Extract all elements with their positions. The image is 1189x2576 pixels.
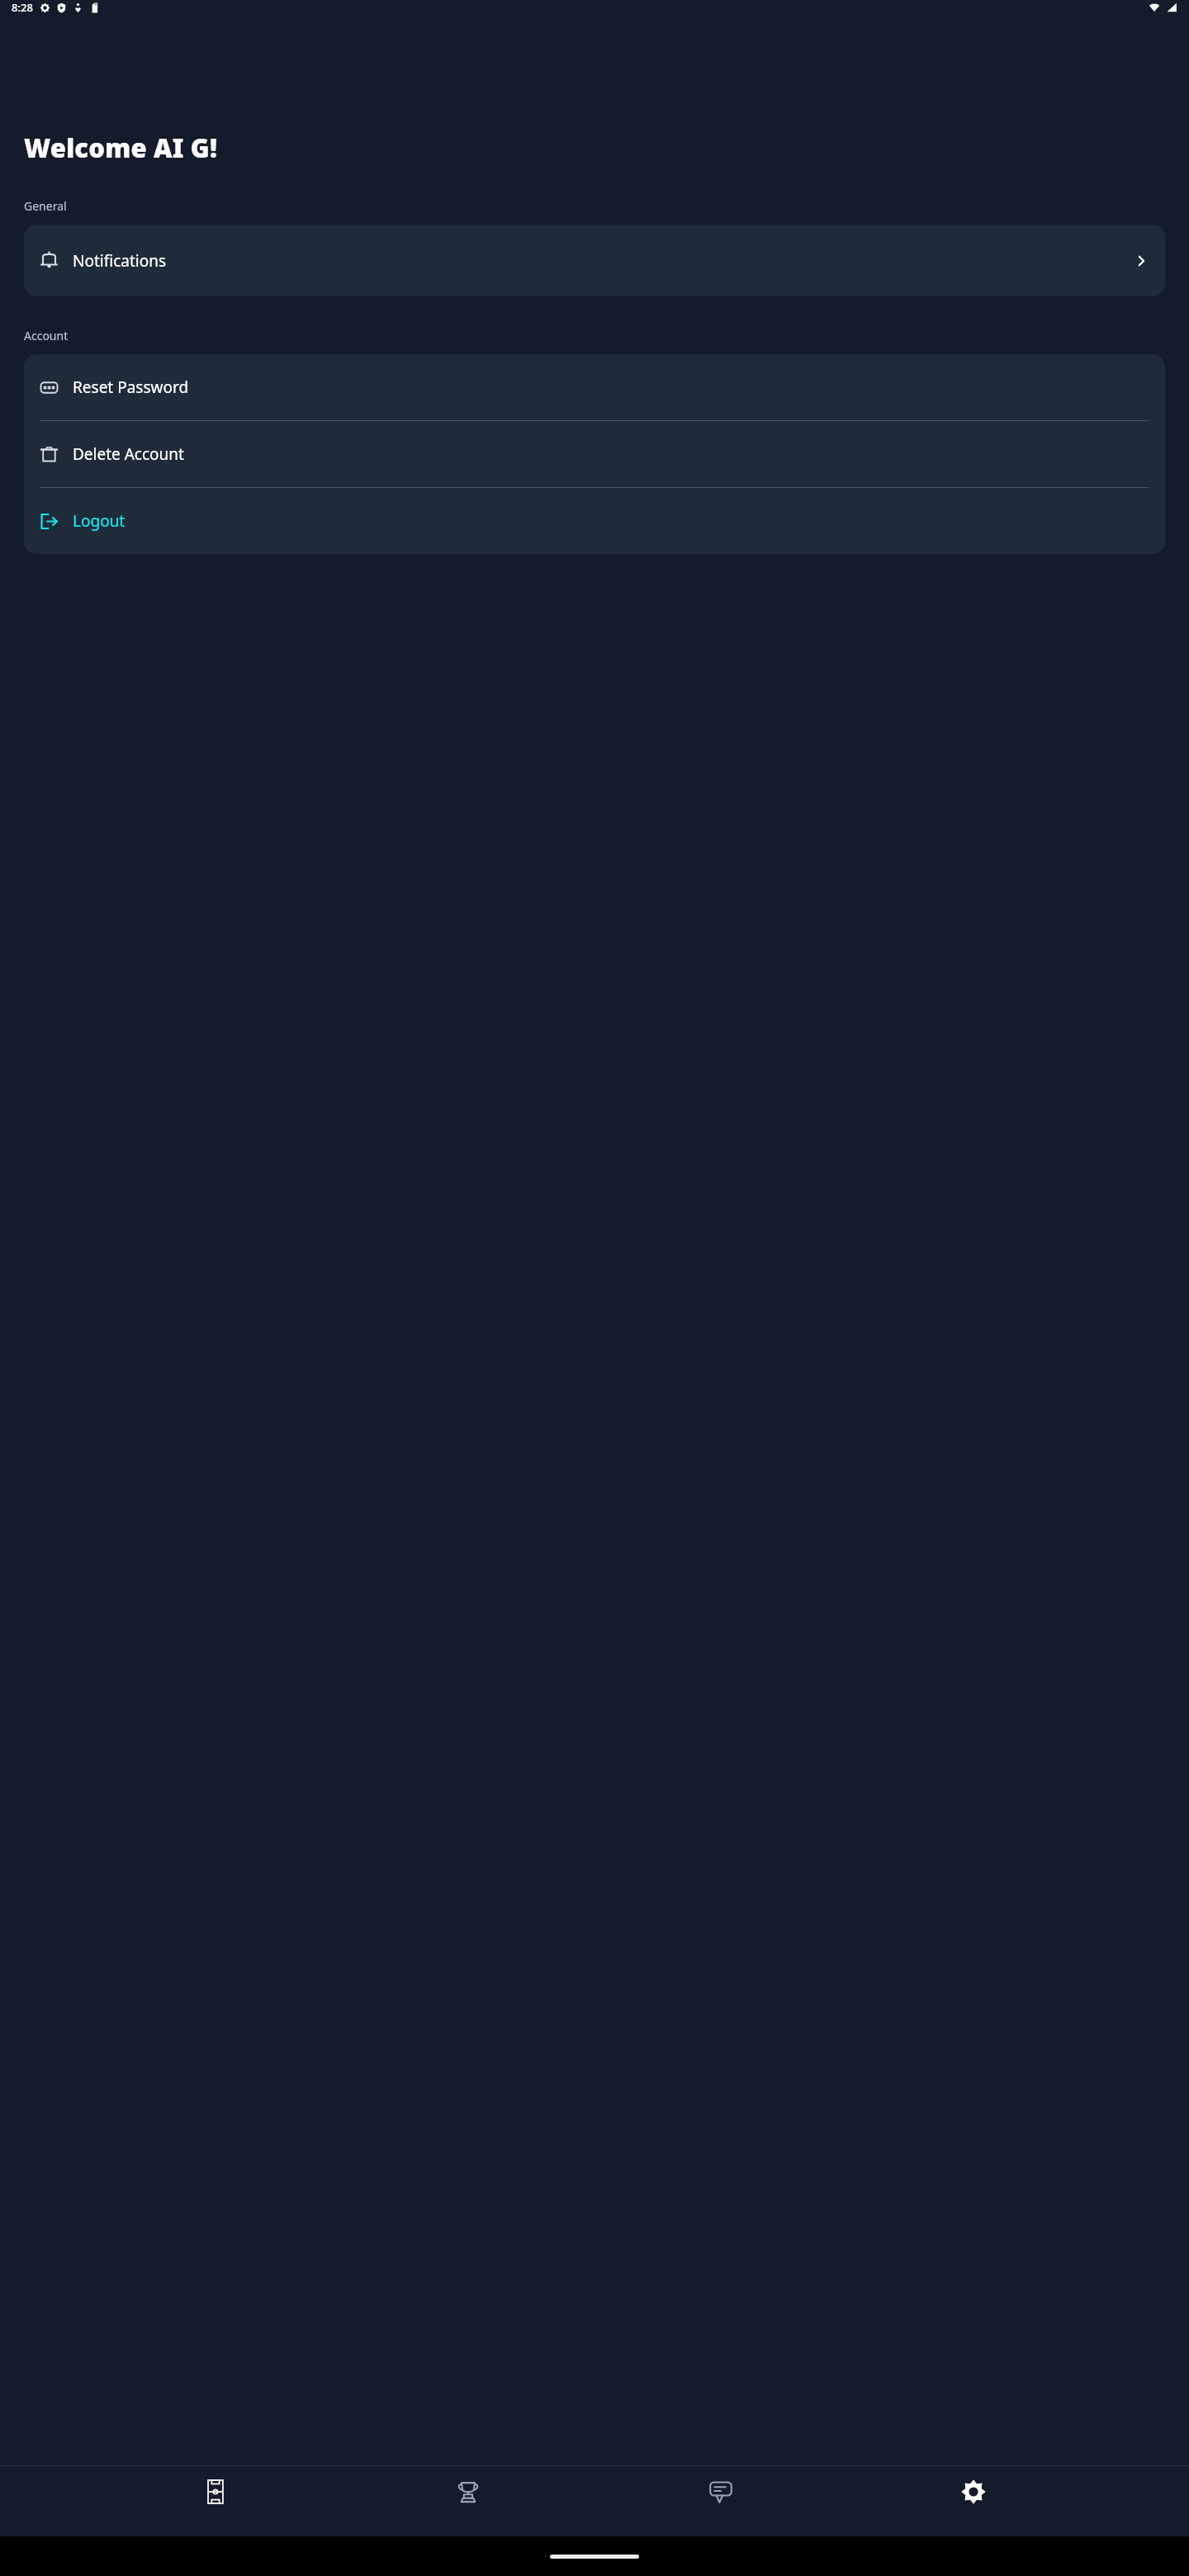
staticText: 8:28 — [12, 0, 33, 15]
button[interactable]: Settings — [936, 2466, 1011, 2536]
button[interactable]: Delete Account — [24, 421, 1165, 487]
staticText: Logout — [73, 510, 126, 532]
button[interactable]: Chat — [684, 2466, 758, 2536]
staticText: Notifications — [73, 250, 167, 272]
button[interactable]: Matches — [178, 2466, 253, 2536]
staticText: General — [24, 198, 67, 214]
button[interactable]: Leaderboard — [431, 2466, 505, 2536]
button[interactable]: Logout — [24, 488, 1165, 554]
staticText: Account — [24, 328, 69, 343]
staticText: Delete Account — [73, 443, 184, 465]
button[interactable]: Reset Password — [24, 354, 1165, 420]
staticText: Welcome AI G! — [24, 130, 218, 165]
staticText: Reset Password — [73, 376, 189, 398]
button[interactable]: Notifications — [24, 225, 1165, 296]
